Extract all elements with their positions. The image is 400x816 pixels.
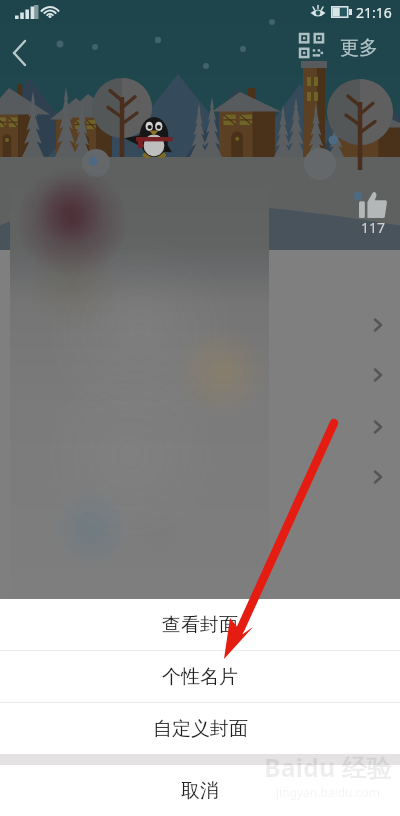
button[interactable]: 个性名片 [0,651,400,702]
button[interactable]: QR code [300,34,327,61]
button[interactable]: 更多 [337,32,381,64]
button[interactable]: 自定义封面 [0,703,400,754]
staticText: 117 [361,218,386,237]
staticText: 自定义封面 [153,717,248,741]
button[interactable]: Like 117 [357,190,389,239]
staticText: 取消 [181,779,219,803]
staticText: 查看封面 [162,613,238,637]
staticText: Baidu 经验 [264,750,392,784]
button[interactable]: 取消 [0,765,400,816]
button[interactable]: 查看封面 [0,599,400,650]
staticText: 21:16 [356,3,392,22]
staticText: 更多 [340,36,378,60]
button[interactable]: Back [2,31,38,67]
staticText: 个性名片 [162,665,238,689]
staticText: jingyan.baidu.com [276,784,380,800]
